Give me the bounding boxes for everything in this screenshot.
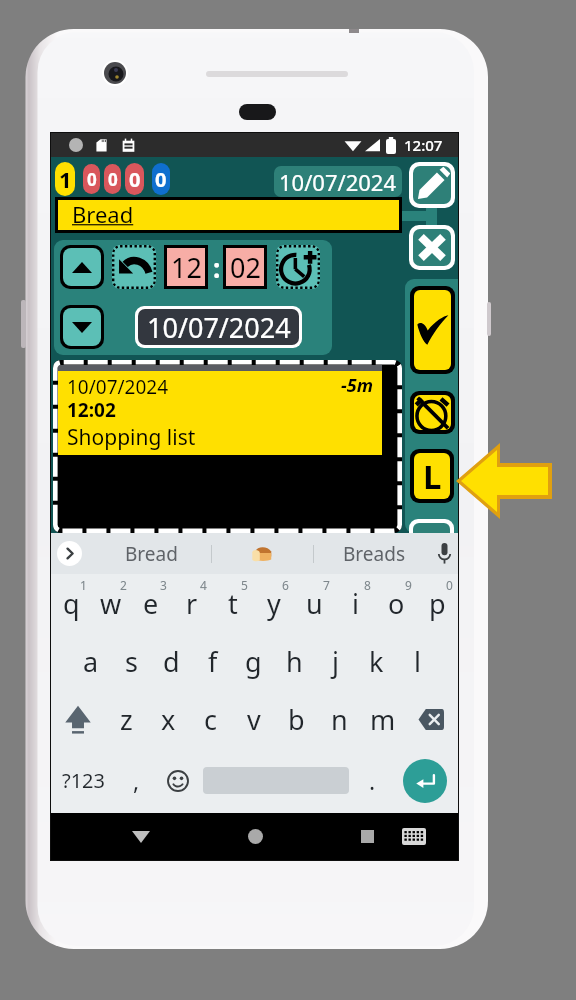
staticText: m	[370, 701, 396, 738]
staticText: k	[369, 643, 384, 680]
button[interactable]: s	[111, 632, 151, 690]
staticText: 10/07/2024	[147, 309, 291, 345]
staticText: a	[83, 643, 99, 680]
button[interactable]: More	[413, 523, 450, 560]
staticText: 12	[171, 249, 202, 286]
button[interactable]: i	[335, 574, 376, 632]
button[interactable]: l	[397, 632, 438, 690]
staticText: 12:02	[67, 397, 116, 423]
staticText: b	[288, 701, 305, 738]
button[interactable]: Decrease	[63, 308, 101, 346]
button[interactable]: m	[361, 690, 404, 748]
button[interactable]: Enter	[392, 748, 458, 813]
button[interactable]: a	[71, 632, 111, 690]
button[interactable]: d	[151, 632, 192, 690]
button[interactable]: Bread	[58, 200, 399, 230]
button[interactable]: j	[315, 632, 356, 690]
staticText: v	[247, 701, 261, 738]
button[interactable]: Back	[121, 813, 161, 860]
button[interactable]: Close	[413, 229, 451, 266]
button[interactable]: Confirm	[414, 290, 451, 370]
staticText: 4	[200, 577, 207, 593]
staticText: 02	[230, 249, 261, 286]
button[interactable]: e	[131, 574, 171, 632]
staticText: 2	[120, 577, 127, 593]
button[interactable]: o	[376, 574, 417, 632]
button[interactable]: Shift	[51, 690, 105, 748]
button[interactable]: h	[274, 632, 315, 690]
staticText: p	[429, 585, 446, 622]
button[interactable]	[212, 533, 312, 574]
staticText: y	[267, 585, 281, 622]
staticText: ,	[133, 765, 140, 796]
staticText: t	[228, 585, 238, 622]
button[interactable]: Mute alarm	[414, 395, 451, 430]
button[interactable]: 10/07/2024	[138, 309, 299, 345]
button[interactable]	[53, 360, 402, 533]
staticText: i	[352, 585, 359, 622]
staticText: r	[186, 585, 198, 622]
button[interactable]: g	[233, 632, 274, 690]
button[interactable]: p	[417, 574, 458, 632]
staticText: L	[423, 454, 442, 499]
button[interactable]: z	[105, 690, 147, 748]
staticText: w	[100, 585, 122, 622]
button[interactable]: r	[171, 574, 212, 632]
button[interactable]	[414, 453, 450, 499]
staticText: 0	[446, 577, 453, 593]
button[interactable]: Bread	[91, 533, 211, 574]
staticText: 1	[80, 577, 87, 593]
button[interactable]: c	[189, 690, 232, 748]
button[interactable]: k	[356, 632, 397, 690]
button[interactable]: x	[147, 690, 189, 748]
staticText: .	[369, 765, 376, 796]
button[interactable]: 0	[152, 163, 170, 195]
button[interactable]: Undo	[112, 245, 156, 289]
button[interactable]: Recents	[347, 813, 387, 860]
staticText: 3	[160, 577, 167, 593]
button[interactable]: .	[352, 748, 392, 813]
staticText: 12:07	[404, 135, 443, 155]
button[interactable]: q	[51, 574, 91, 632]
staticText: o	[388, 585, 405, 622]
button[interactable]: Space	[200, 748, 352, 813]
staticText: Bread	[72, 199, 134, 229]
button[interactable]: b	[275, 690, 318, 748]
button[interactable]: ?123	[51, 748, 116, 813]
staticText: 10/07/2024	[67, 374, 169, 400]
button[interactable]: y	[253, 574, 294, 632]
button[interactable]: t	[212, 574, 253, 632]
button[interactable]: Switch keyboard	[394, 813, 434, 860]
button[interactable]: Edit	[413, 166, 451, 204]
staticText: s	[125, 643, 138, 680]
button[interactable]: f	[192, 632, 233, 690]
button[interactable]: w	[91, 574, 131, 632]
staticText: 0	[155, 166, 167, 193]
staticText: Bread	[125, 541, 178, 567]
staticText: e	[143, 585, 159, 622]
staticText: 8	[364, 577, 371, 593]
staticText: Shopping list	[67, 423, 196, 452]
button[interactable]: Home	[235, 813, 275, 860]
button[interactable]: Emoji	[156, 748, 200, 813]
button[interactable]: Expand suggestions	[57, 541, 82, 566]
button[interactable]: 02	[226, 248, 264, 286]
button[interactable]: 10/07/2024	[274, 166, 402, 197]
button[interactable]: Increase	[63, 248, 101, 286]
button[interactable]: 0	[125, 163, 144, 195]
button[interactable]: Add alarm	[276, 245, 320, 289]
button[interactable]: v	[232, 690, 275, 748]
button[interactable]: Delete	[404, 690, 458, 748]
button[interactable]: 12	[167, 248, 205, 286]
button[interactable]: 0	[83, 164, 100, 194]
staticText: g	[245, 643, 262, 680]
button[interactable]: 1	[55, 162, 75, 196]
staticText: 1	[59, 164, 72, 194]
button[interactable]: 0	[104, 164, 121, 194]
button[interactable]: Voice input	[430, 533, 458, 574]
button[interactable]: Breads	[314, 533, 434, 574]
button[interactable]: ,	[116, 748, 156, 813]
staticText: f	[208, 643, 218, 680]
button[interactable]: n	[318, 690, 361, 748]
button[interactable]: u	[294, 574, 335, 632]
